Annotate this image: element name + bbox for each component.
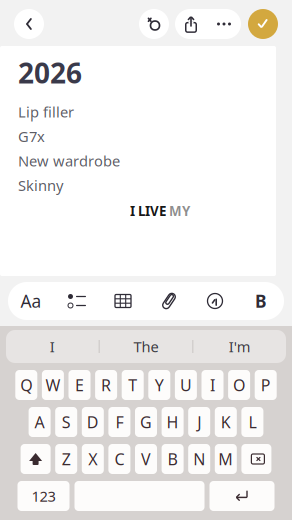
staticText: I — [210, 374, 215, 396]
staticText: P — [261, 374, 271, 396]
staticText: B — [168, 448, 178, 470]
button[interactable]: I — [6, 330, 99, 363]
staticText: C — [114, 448, 124, 470]
button[interactable]: B — [162, 444, 184, 474]
staticText: A — [35, 411, 45, 433]
button[interactable]: Markup — [192, 282, 238, 320]
button[interactable]: E — [68, 370, 90, 400]
button[interactable]: X — [82, 444, 104, 474]
staticText: Skinny — [18, 176, 63, 195]
button[interactable]: Table — [100, 282, 146, 320]
staticText: K — [221, 411, 231, 433]
button[interactable]: Delete — [241, 444, 271, 474]
button[interactable]: C — [108, 444, 130, 474]
button[interactable]: The — [100, 330, 192, 363]
button[interactable]: Q — [15, 370, 37, 400]
staticText: I LIVE — [130, 202, 169, 220]
button[interactable]: Z — [55, 444, 77, 474]
button[interactable]: G — [135, 407, 157, 437]
button[interactable]: Y — [148, 370, 170, 400]
button[interactable]: V — [135, 444, 157, 474]
button[interactable]: D — [82, 407, 104, 437]
staticText: J — [197, 411, 201, 433]
staticText: B — [255, 289, 267, 312]
staticText: New wardrobe — [18, 151, 120, 171]
button[interactable]: K — [215, 407, 237, 437]
staticText: R — [101, 374, 111, 396]
staticText: I'm — [229, 337, 251, 356]
button[interactable]: T — [122, 370, 144, 400]
staticText: Y — [155, 374, 164, 396]
staticText: V — [141, 448, 151, 470]
staticText: T — [128, 374, 137, 396]
staticText: U — [180, 374, 192, 396]
button[interactable]: Return — [209, 481, 274, 511]
button[interactable]: H — [162, 407, 184, 437]
button[interactable]: W — [42, 370, 64, 400]
button[interactable]: I — [201, 370, 223, 400]
button[interactable]: U — [175, 370, 197, 400]
button[interactable]: O — [228, 370, 250, 400]
button[interactable]: Attach — [146, 282, 192, 320]
staticText: D — [87, 411, 99, 433]
staticText: F — [115, 411, 123, 433]
staticText: I — [50, 337, 55, 356]
button[interactable]: N — [188, 444, 210, 474]
staticText: H — [167, 411, 179, 433]
button[interactable]: R — [95, 370, 117, 400]
staticText: W — [45, 374, 60, 396]
staticText: S — [62, 411, 71, 433]
staticText: Z — [62, 448, 71, 470]
staticText: M — [218, 448, 233, 470]
button[interactable]: Bold — [238, 282, 284, 320]
button[interactable]: M — [215, 444, 237, 474]
staticText: L — [248, 411, 256, 433]
button[interactable]: J — [188, 407, 210, 437]
button[interactable]: Checklist — [54, 282, 100, 320]
staticText: N — [193, 448, 205, 470]
staticText: MY — [169, 202, 190, 220]
staticText: G — [140, 411, 152, 433]
button[interactable]: Done — [248, 9, 278, 39]
staticText: O — [233, 374, 245, 396]
button[interactable]: I'm — [193, 330, 286, 363]
button[interactable]: Back — [14, 9, 44, 39]
staticText: X — [88, 448, 97, 470]
button[interactable]: Share — [175, 9, 207, 39]
staticText: E — [75, 374, 84, 396]
button[interactable]: A — [29, 407, 51, 437]
button[interactable]: S — [55, 407, 77, 437]
staticText: Aa — [20, 289, 41, 312]
staticText: Lip filler — [18, 102, 74, 122]
staticText: 123 — [31, 486, 55, 506]
button[interactable]: 123 — [17, 481, 69, 511]
button[interactable]: Text format — [8, 282, 54, 320]
staticText: Q — [20, 374, 32, 396]
staticText: G7x — [18, 127, 45, 146]
button[interactable]: Shift — [21, 444, 51, 474]
staticText: The — [133, 337, 158, 356]
button[interactable]: More — [207, 9, 241, 39]
button[interactable]: F — [108, 407, 130, 437]
staticText: 2026 — [18, 54, 82, 91]
button[interactable]: P — [255, 370, 277, 400]
button[interactable]: L — [241, 407, 263, 437]
button[interactable]: Undo — [139, 9, 169, 39]
